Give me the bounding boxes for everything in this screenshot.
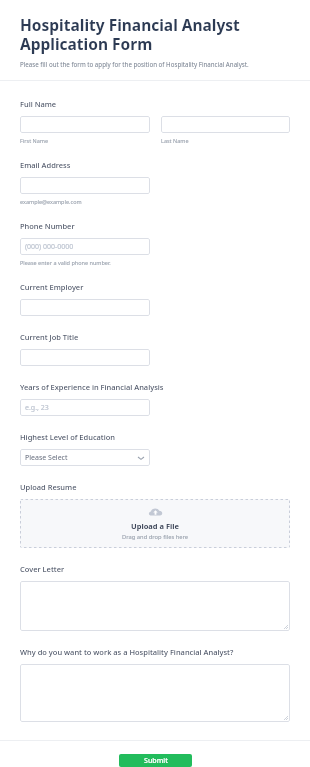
- button[interactable]: Highest level of education, Please Selec…: [20, 449, 150, 466]
- staticText: Please fill out the form to apply for th…: [20, 60, 249, 68]
- staticText: Phone Number: [20, 221, 75, 231]
- button[interactable]: Phone number: [20, 238, 150, 255]
- staticText: Upload a File: [131, 521, 180, 531]
- staticText: Current Job Title: [20, 332, 79, 342]
- staticText: Years of Experience in Financial Analysi…: [20, 382, 164, 392]
- button[interactable]: Submit: [119, 754, 192, 767]
- staticText: Please Select: [25, 453, 68, 463]
- button[interactable]: Email address: [20, 177, 150, 194]
- staticText: Upload Resume: [20, 482, 77, 492]
- staticText: Email Address: [20, 160, 71, 170]
- button[interactable]: Current job title: [20, 349, 150, 366]
- staticText: (000) 000-0000: [25, 242, 74, 252]
- staticText: Submit: [144, 756, 168, 766]
- button[interactable]: Cover letter: [20, 581, 290, 631]
- button[interactable]: Why do you want to work as a Hospitality…: [20, 664, 290, 722]
- button[interactable]: Last name: [161, 116, 290, 133]
- staticText: Why do you want to work as a Hospitality…: [20, 647, 234, 657]
- staticText: Highest Level of Education: [20, 432, 116, 442]
- button[interactable]: Upload a file, drag and drop files here: [20, 499, 290, 548]
- button[interactable]: First name: [20, 116, 150, 133]
- button[interactable]: Years of experience: [20, 399, 150, 416]
- staticText: Cover Letter: [20, 564, 65, 574]
- staticText: Drag and drop files here: [122, 533, 189, 541]
- staticText: Hospitality Financial Analyst Applicatio…: [20, 14, 290, 54]
- staticText: First Name: [20, 137, 49, 144]
- staticText: e.g., 23: [25, 403, 49, 413]
- staticText: Full Name: [20, 99, 57, 109]
- staticText: Please enter a valid phone number.: [20, 259, 111, 266]
- staticText: example@example.com: [20, 198, 82, 205]
- staticText: Current Employer: [20, 282, 84, 292]
- button[interactable]: Current employer: [20, 299, 150, 316]
- staticText: Last Name: [161, 137, 189, 144]
